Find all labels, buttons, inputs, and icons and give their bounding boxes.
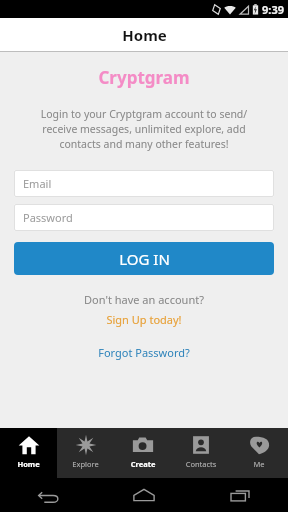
staticText: Login to your Cryptgram account to send/… [12, 107, 276, 151]
other: Home [18, 434, 40, 456]
button[interactable]: Contacts [172, 428, 230, 478]
button[interactable]: LOG IN [14, 242, 274, 275]
staticText: Home [0, 459, 57, 469]
button[interactable]: Me [230, 428, 288, 478]
button[interactable]: Sign Up today! [0, 310, 288, 329]
staticText: Explore [57, 459, 114, 469]
other: Explore [75, 434, 97, 456]
staticText: Email [23, 176, 52, 191]
button[interactable]: Password [14, 204, 274, 231]
other: Create [132, 434, 154, 456]
button[interactable]: Recents [192, 478, 288, 512]
staticText: Cryptgram [0, 66, 288, 89]
staticText: Password [23, 210, 73, 225]
button[interactable]: Home [96, 478, 192, 512]
staticText: Contacts [172, 459, 230, 469]
button[interactable]: Create [114, 428, 172, 478]
staticText: Don't have an account? [0, 292, 288, 307]
other: Contacts [190, 434, 212, 456]
button[interactable]: Home [0, 428, 57, 478]
staticText: Create [114, 459, 172, 469]
staticText: Home [122, 25, 167, 45]
staticText: Me [230, 459, 288, 469]
staticText: LOG IN [119, 249, 170, 269]
button[interactable]: Forgot Password? [0, 343, 288, 362]
staticText: Sign Up today! [0, 312, 288, 327]
button[interactable]: Explore [57, 428, 114, 478]
staticText: Forgot Password? [0, 345, 288, 360]
other: Me [248, 434, 270, 456]
button[interactable]: Back [0, 478, 96, 512]
button[interactable]: Email [14, 170, 274, 197]
staticText: 9:39 [262, 2, 284, 17]
